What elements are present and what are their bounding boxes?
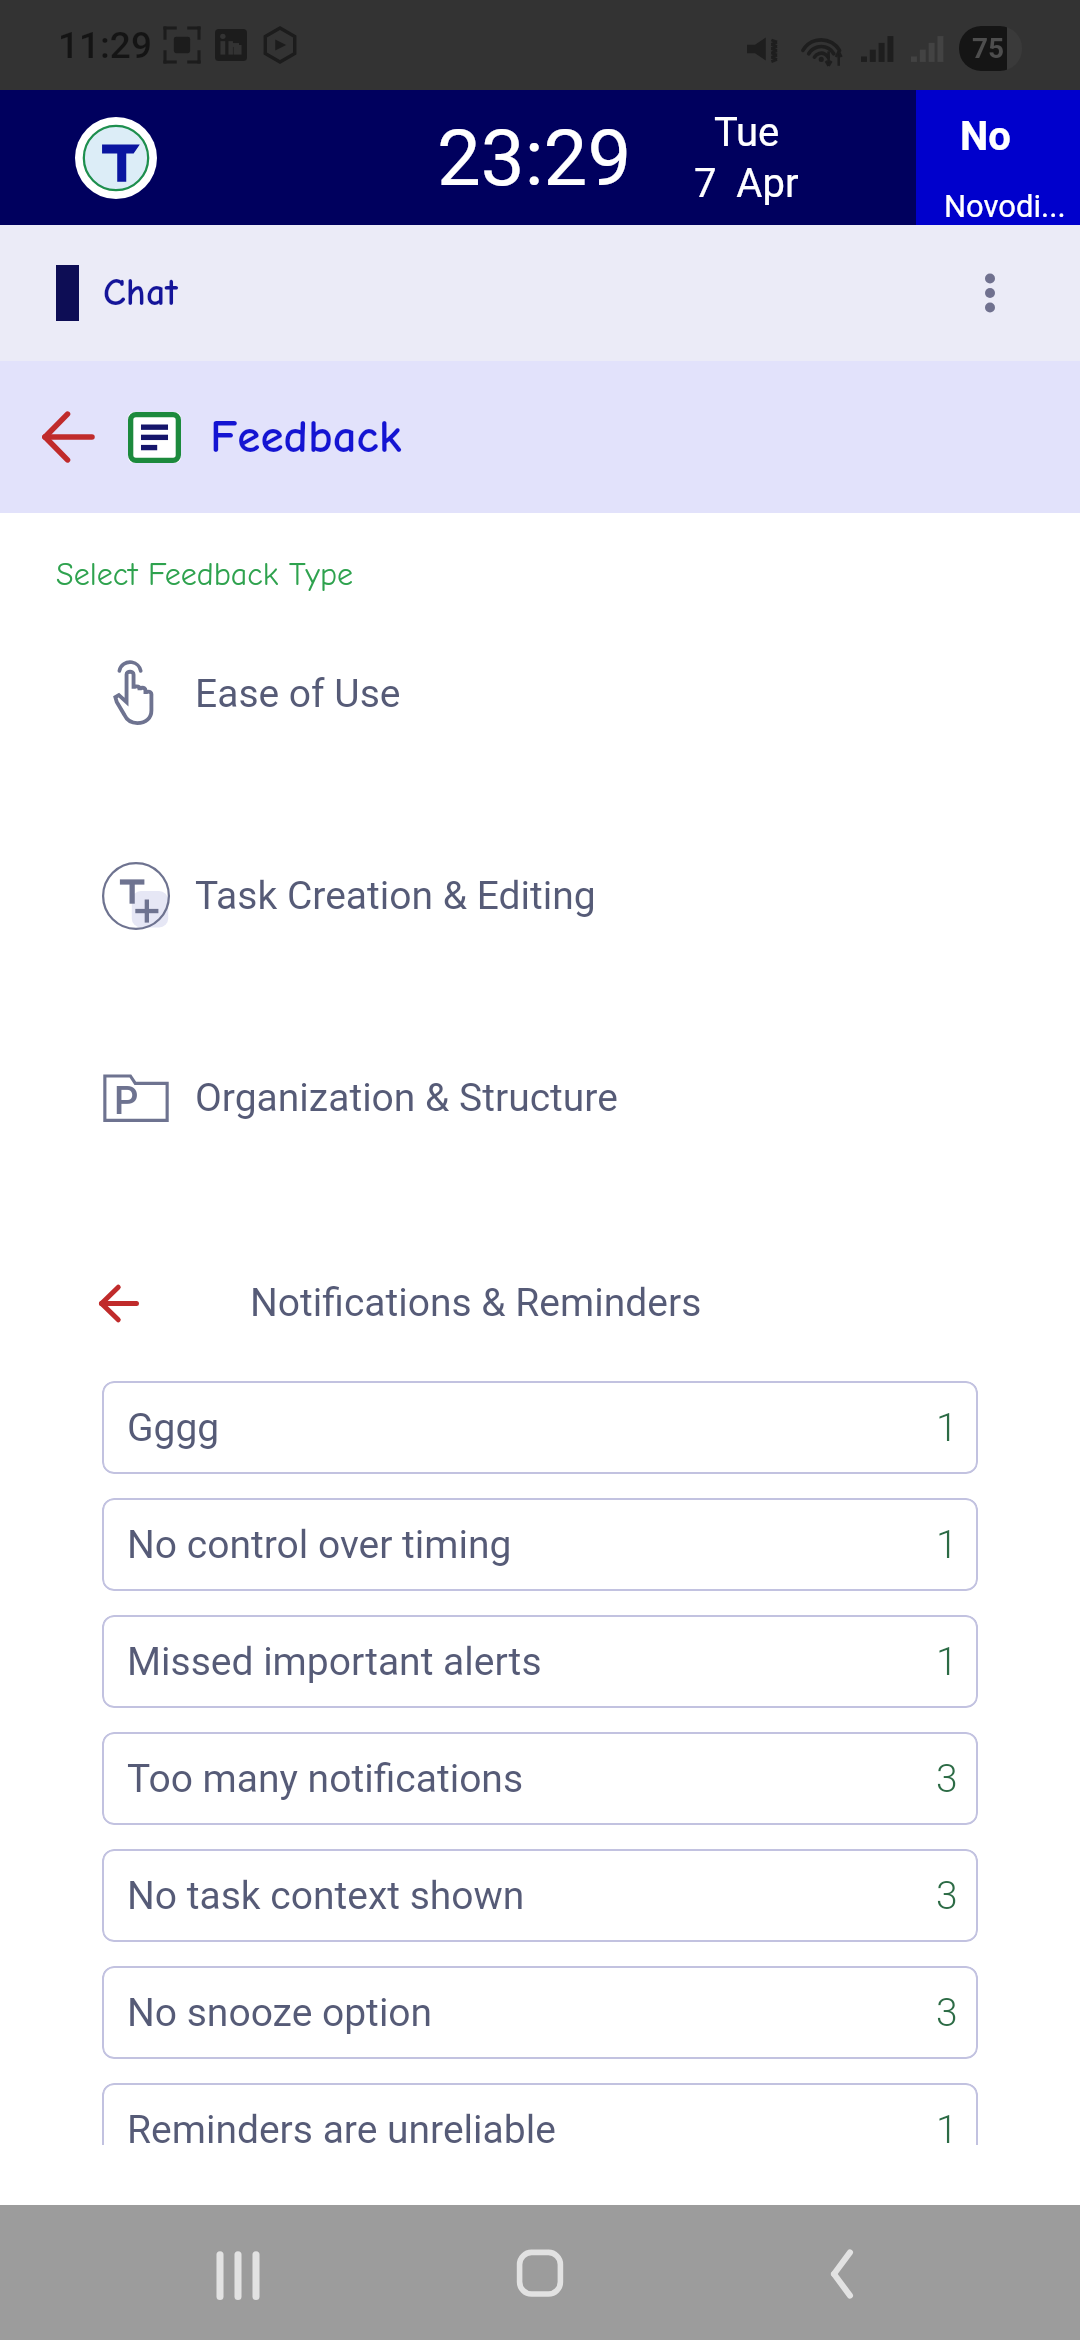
staticText: Tue <box>714 109 780 156</box>
staticText: 1 <box>936 1522 958 1568</box>
button[interactable]: Too many notifications <box>102 1732 978 1825</box>
staticText: Organization & Structure <box>195 1075 618 1121</box>
button[interactable]: Chat <box>56 265 178 321</box>
button[interactable]: No snooze option <box>102 1966 978 2059</box>
button[interactable]: Task Creation & Editing <box>0 860 1080 932</box>
staticText: Ease of Use <box>195 671 401 717</box>
staticText: 75 <box>972 32 1005 65</box>
staticText: Reminders are unreliable <box>127 2107 556 2145</box>
staticText: No task context shown <box>127 1873 525 1919</box>
button[interactable]: Ease of Use <box>0 658 1080 730</box>
staticText: 23:29 <box>437 113 632 204</box>
staticText: Feedback <box>210 410 402 464</box>
staticText: 1 <box>936 1405 958 1451</box>
button[interactable]: Reminders are unreliable <box>102 2083 978 2145</box>
staticText: 11:29 <box>58 24 152 67</box>
button[interactable]: More options <box>960 263 1020 323</box>
staticText: P <box>114 1079 139 1124</box>
button[interactable]: Notifications & Reminders <box>0 1265 1080 1341</box>
button[interactable]: Missed important alerts <box>102 1615 978 1708</box>
button[interactable]: Gggg <box>102 1381 978 1474</box>
staticText: No <box>960 113 1011 160</box>
button[interactable]: Home <box>500 2230 580 2310</box>
button[interactable]: P <box>0 1062 1080 1134</box>
staticText: No snooze option <box>127 1990 433 2036</box>
staticText: Gggg <box>127 1405 220 1451</box>
staticText: Novodi... <box>944 188 1066 224</box>
staticText: 7 Apr <box>694 160 799 207</box>
staticText: Chat <box>103 271 178 315</box>
button[interactable]: No task context shown <box>102 1849 978 1942</box>
button[interactable]: Back <box>43 411 94 463</box>
staticText: 3 <box>936 1873 958 1919</box>
staticText: Task Creation & Editing <box>195 873 596 919</box>
staticText: Missed important alerts <box>127 1639 542 1685</box>
staticText: 1 <box>936 2107 958 2145</box>
button[interactable]: Recents <box>198 2230 278 2310</box>
staticText: Notifications & Reminders <box>250 1280 702 1326</box>
button[interactable]: No control over timing <box>102 1498 978 1591</box>
staticText: 1 <box>936 1639 958 1685</box>
staticText: Select Feedback Type <box>56 556 353 593</box>
staticText: 3 <box>936 1756 958 1802</box>
button[interactable]: Back <box>802 2230 882 2310</box>
staticText: 3 <box>936 1990 958 2036</box>
staticText: Too many notifications <box>127 1756 524 1802</box>
button[interactable]: App logo <box>75 117 157 199</box>
button[interactable]: No <box>916 90 1080 225</box>
staticText: No control over timing <box>127 1522 512 1568</box>
